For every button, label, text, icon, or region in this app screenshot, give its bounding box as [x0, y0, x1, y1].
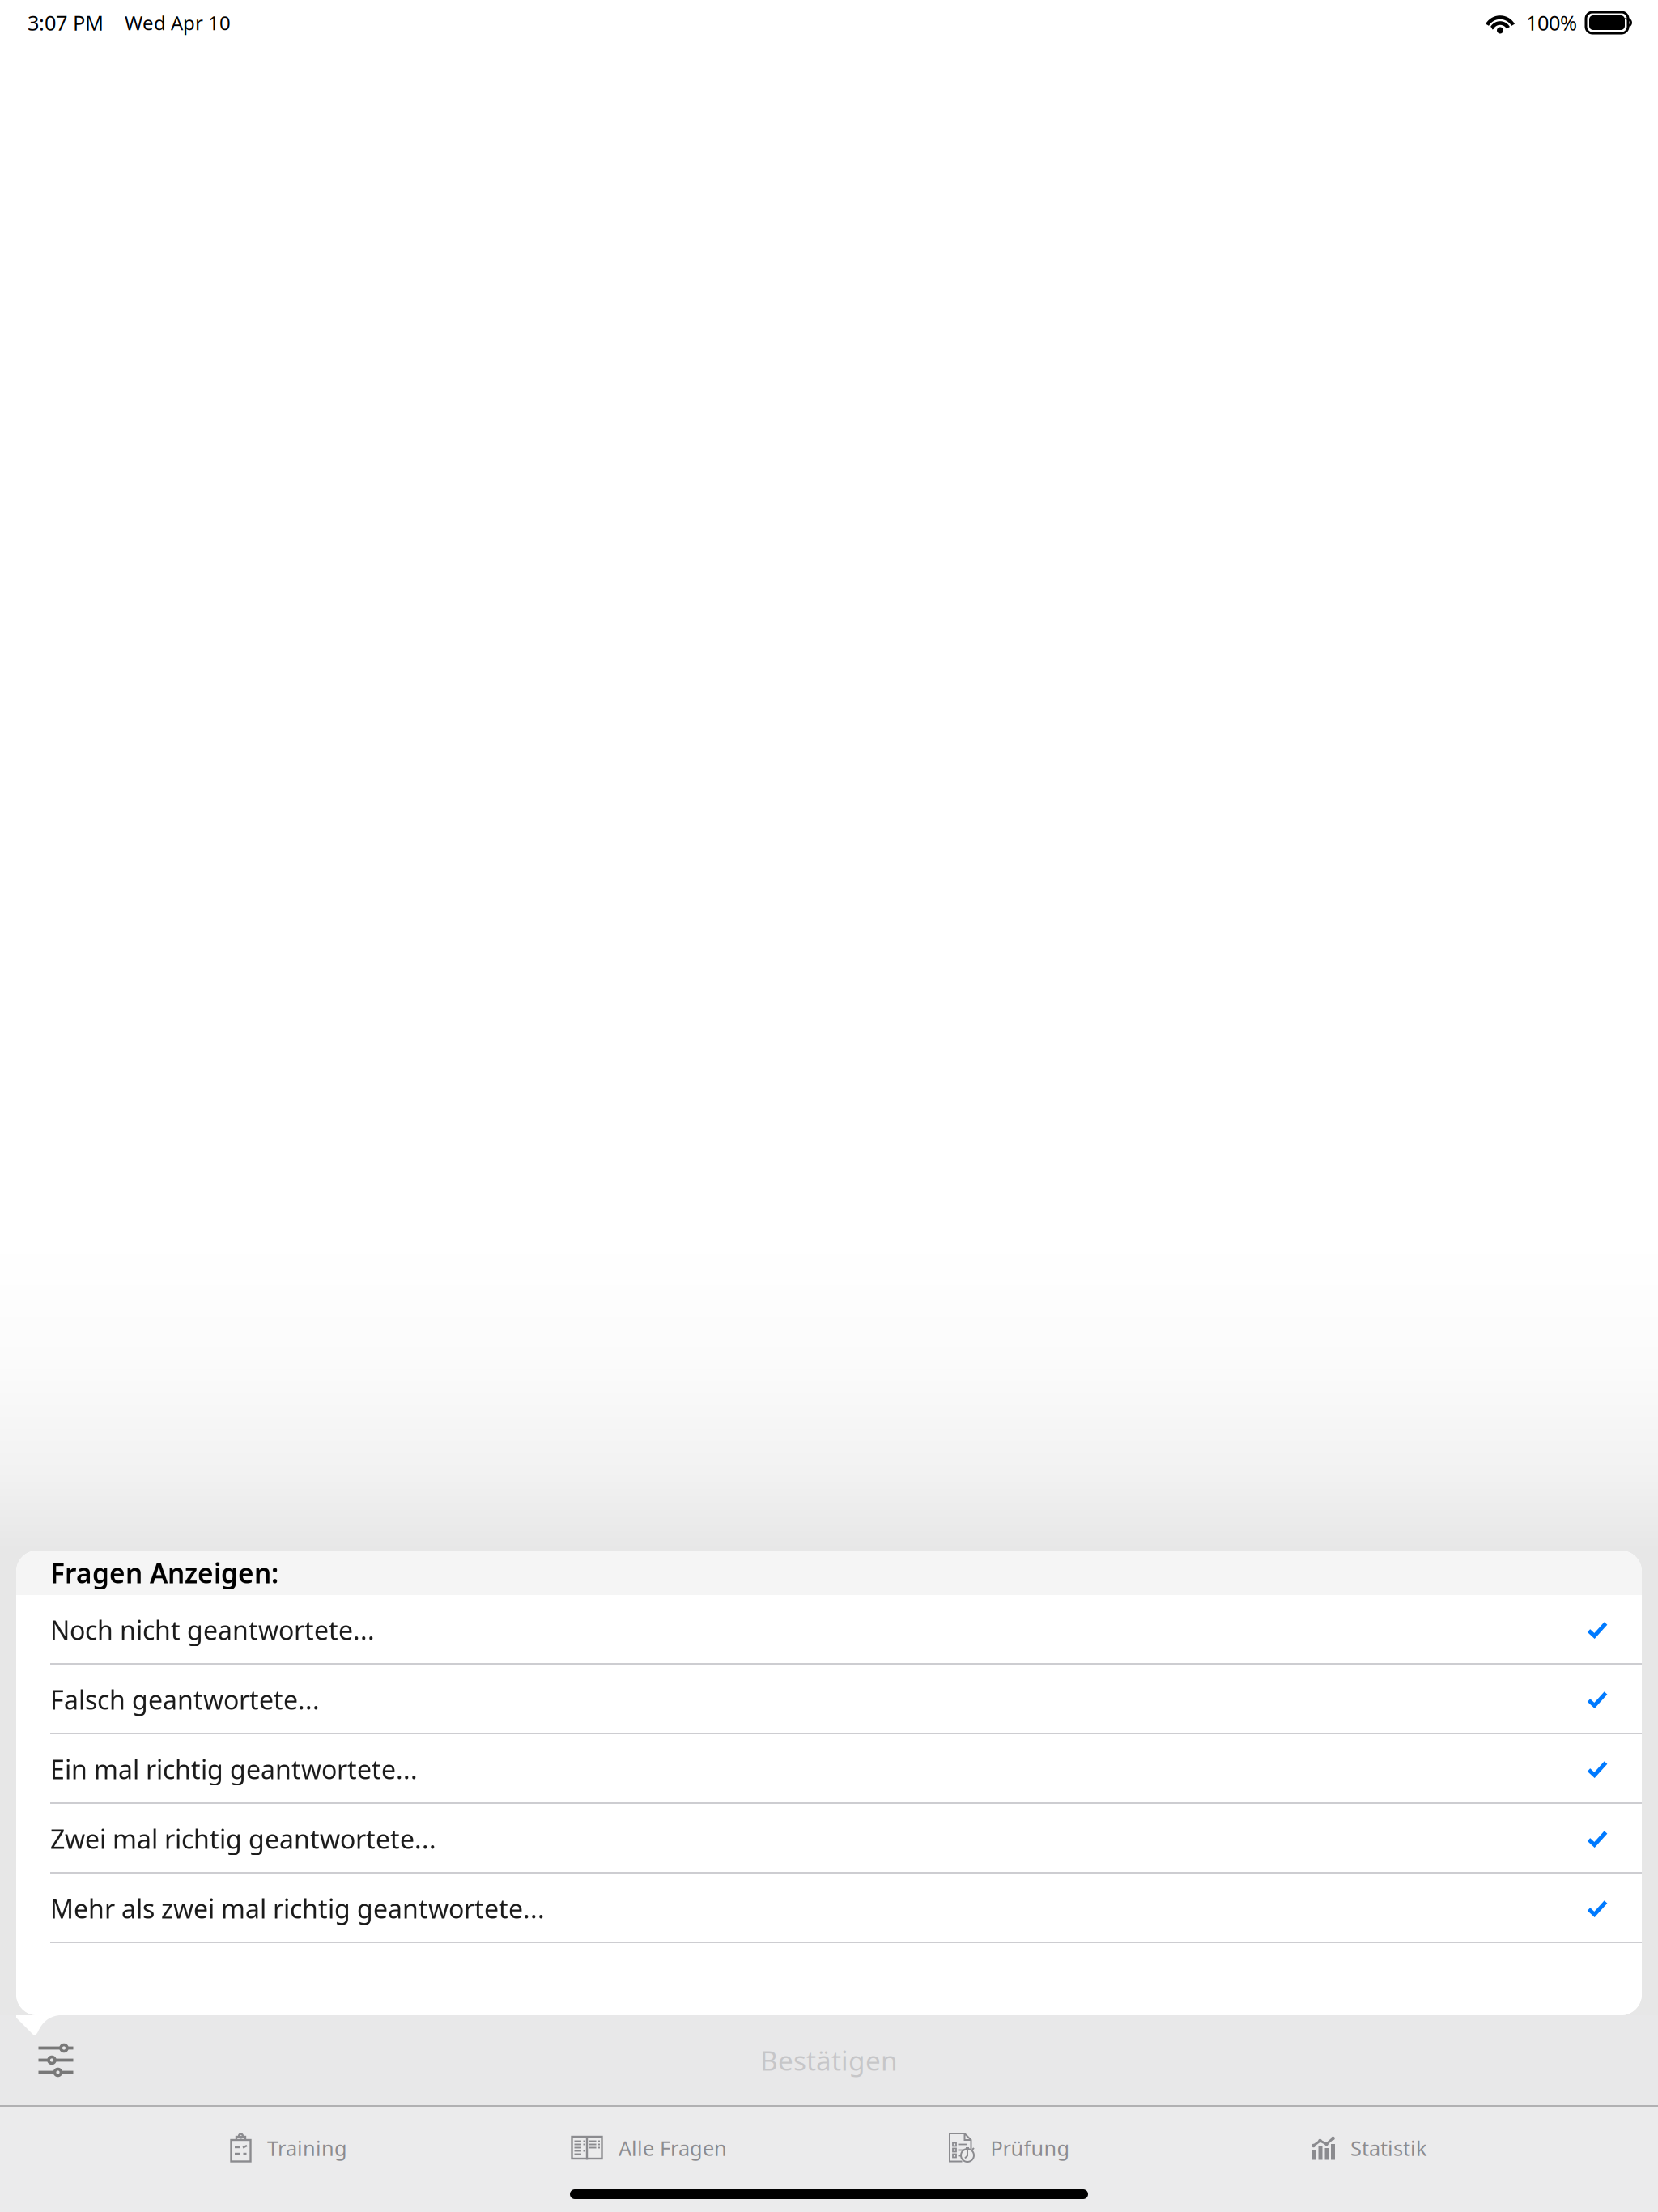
- staticText: Fragen Anzeigen:: [50, 1555, 278, 1591]
- button[interactable]: Training: [108, 2107, 469, 2189]
- button[interactable]: Mehr als zwei mal richtig geantwortete..…: [16, 1874, 1642, 1943]
- staticText: Wed Apr 10: [125, 10, 231, 36]
- staticText: Falsch geantwortete...: [50, 1682, 320, 1717]
- button[interactable]: Ein mal richtig geantwortete...: [16, 1734, 1642, 1804]
- staticText: Training: [267, 2134, 347, 2162]
- button[interactable]: Statistik: [1189, 2107, 1550, 2189]
- staticText: Noch nicht geantwortete...: [50, 1613, 375, 1647]
- button[interactable]: Noch nicht geantwortete...: [16, 1595, 1642, 1665]
- staticText: Ein mal richtig geantwortete...: [50, 1752, 418, 1786]
- button[interactable]: Zwei mal richtig geantwortete...: [16, 1804, 1642, 1874]
- staticText: 100%: [1526, 9, 1577, 36]
- staticText: Alle Fragen: [619, 2134, 727, 2162]
- staticText: Statistik: [1350, 2134, 1427, 2162]
- staticText: 3:07 PM: [28, 9, 104, 36]
- button[interactable]: Fragen Anzeigen Filter: [17, 2015, 95, 2105]
- staticText: Zwei mal richtig geantwortete...: [50, 1822, 436, 1856]
- button[interactable]: Falsch geantwortete...: [16, 1665, 1642, 1734]
- button[interactable]: Prüfung: [829, 2107, 1189, 2189]
- staticText: Bestätigen: [760, 2042, 898, 2078]
- staticText: Mehr als zwei mal richtig geantwortete..…: [50, 1891, 545, 1926]
- button[interactable]: Alle Fragen: [469, 2107, 829, 2189]
- staticText: Prüfung: [991, 2134, 1070, 2162]
